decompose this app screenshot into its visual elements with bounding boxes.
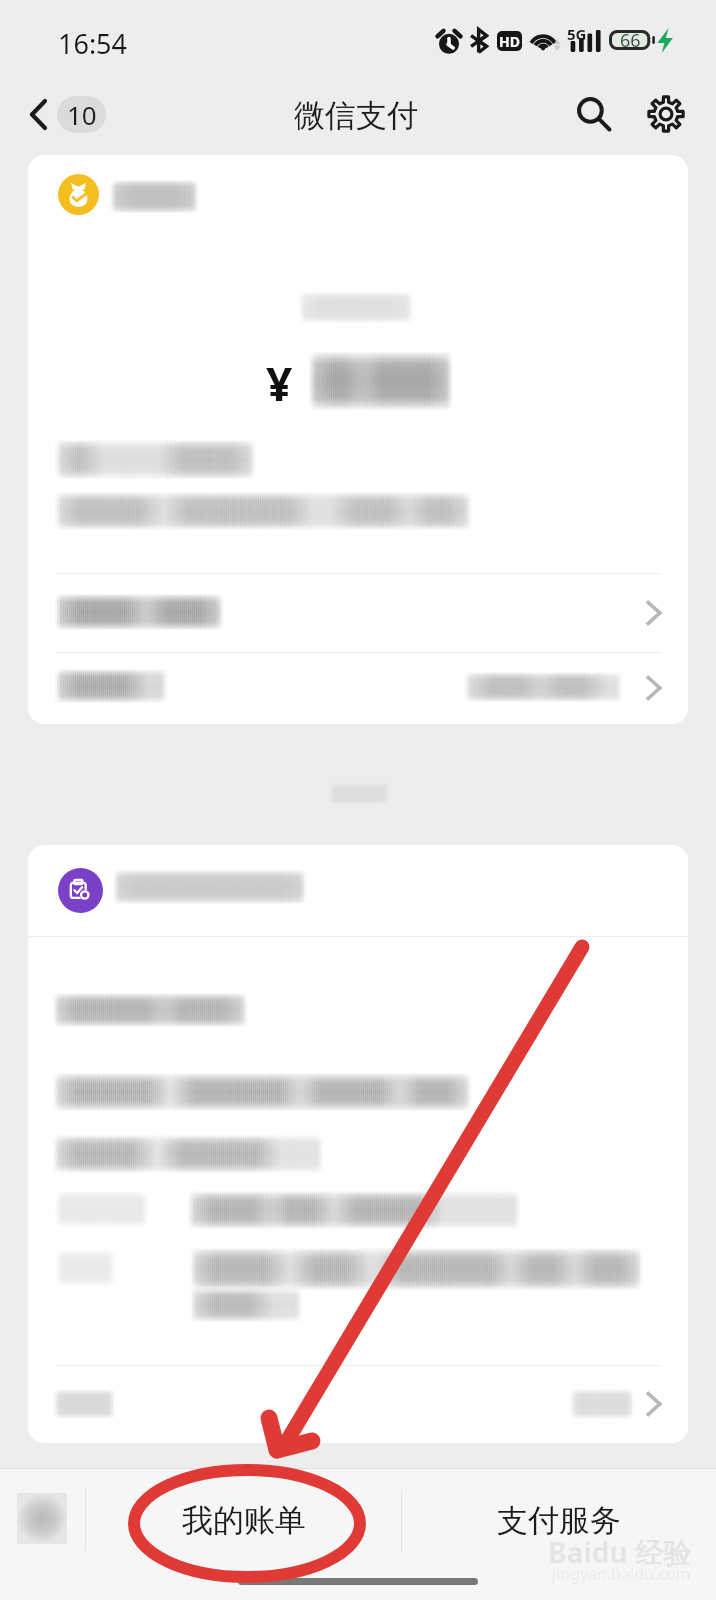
staticText: 10 <box>67 97 97 132</box>
button[interactable]: Back, 10 unread <box>20 88 106 140</box>
button[interactable]: Profile <box>10 1486 74 1551</box>
staticText: jingyan.baidu.com <box>552 1563 691 1585</box>
staticText: ¥ <box>266 352 293 415</box>
button[interactable]: Transaction detail row 1 <box>28 574 688 652</box>
button[interactable]: Search <box>570 90 618 138</box>
staticText: 微信支付 <box>294 96 418 135</box>
staticText: Baidu 经验 <box>548 1533 691 1571</box>
button[interactable]: Transaction detail row 2 <box>28 653 688 722</box>
button[interactable]: Order detail row <box>28 1366 688 1444</box>
staticText: 16:54 <box>58 25 128 62</box>
staticText: 66 <box>620 28 641 52</box>
staticText: 5G <box>567 24 587 44</box>
staticText: 支付服务 <box>497 1501 621 1540</box>
button[interactable]: 我的账单 <box>87 1469 401 1571</box>
button[interactable]: Settings <box>642 90 690 138</box>
staticText: HD <box>499 32 520 51</box>
staticText: 我的账单 <box>182 1501 306 1540</box>
button[interactable]: 支付服务 <box>402 1469 716 1571</box>
